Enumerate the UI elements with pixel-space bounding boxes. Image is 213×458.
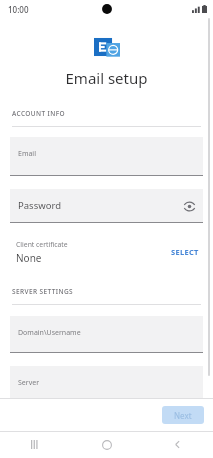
button[interactable]: Server xyxy=(10,366,203,398)
button[interactable]: Home xyxy=(71,431,142,458)
staticText: Email setup xyxy=(0,68,213,88)
staticText: None xyxy=(16,251,42,265)
staticText: Next xyxy=(174,410,192,421)
staticText: Server xyxy=(18,378,40,388)
button[interactable]: SELECT xyxy=(169,243,201,261)
button[interactable]: Show password xyxy=(181,198,197,214)
staticText: ACCOUNT INFO xyxy=(12,109,66,118)
staticText: Password xyxy=(18,199,61,212)
staticText: SERVER SETTINGS xyxy=(12,287,73,296)
staticText: Client certificate xyxy=(16,240,68,249)
button[interactable]: Password xyxy=(10,189,203,223)
button[interactable]: Client certificate xyxy=(12,235,201,269)
staticText: SELECT xyxy=(171,247,199,257)
staticText: Email xyxy=(18,149,36,159)
button[interactable]: Domain\Username xyxy=(10,316,203,353)
button[interactable]: Back xyxy=(142,431,213,458)
button[interactable]: Email xyxy=(10,137,203,176)
staticText: Domain\Username xyxy=(18,328,81,338)
button[interactable]: Next xyxy=(162,406,204,424)
staticText: 10:00 xyxy=(8,4,29,15)
button[interactable]: Recents xyxy=(0,431,71,458)
